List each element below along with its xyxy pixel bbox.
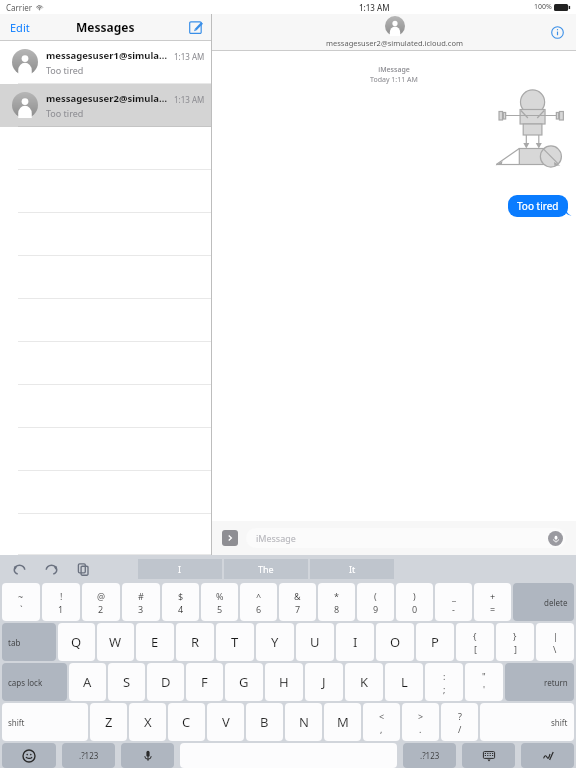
staticText: 100% — [534, 2, 552, 12]
button[interactable]: Handwriting — [521, 743, 574, 768]
button[interactable]: B — [246, 703, 283, 741]
staticText: E — [151, 633, 159, 651]
button[interactable]: } — [496, 623, 534, 661]
button[interactable]: @ — [82, 583, 120, 621]
button[interactable]: { — [456, 623, 494, 661]
button[interactable]: ~ — [2, 583, 40, 621]
button[interactable]: E — [136, 623, 174, 661]
button[interactable]: & — [279, 583, 316, 621]
button[interactable]: + — [474, 583, 511, 621]
button[interactable]: messagesuser1@simulate... — [0, 41, 211, 84]
button[interactable]: .?123 — [62, 743, 115, 768]
button[interactable]: : — [425, 663, 463, 701]
button[interactable]: ! — [42, 583, 80, 621]
button[interactable]: Dictate — [121, 743, 174, 768]
button[interactable]: Z — [90, 703, 127, 741]
button[interactable]: Redo — [42, 560, 60, 578]
button[interactable]: shift — [480, 703, 574, 741]
button[interactable]: Edit — [0, 16, 40, 39]
button[interactable]: R — [176, 623, 214, 661]
button[interactable]: I — [138, 559, 222, 579]
staticText: Too tired — [517, 199, 559, 213]
button[interactable]: Hide keyboard — [462, 743, 515, 768]
button[interactable]: % — [201, 583, 238, 621]
staticText: 1:13 AM — [174, 94, 205, 105]
staticText: ] — [514, 643, 517, 655]
button[interactable]: U — [296, 623, 334, 661]
button[interactable]: Y — [256, 623, 294, 661]
button[interactable]: M — [324, 703, 361, 741]
button[interactable]: > — [402, 703, 439, 741]
button[interactable]: T — [216, 623, 254, 661]
button[interactable]: A — [69, 663, 106, 701]
button[interactable]: N — [285, 703, 322, 741]
staticText: T — [231, 633, 239, 651]
staticText: P — [431, 633, 439, 651]
staticText: ` — [20, 603, 23, 615]
button[interactable]: delete — [513, 583, 574, 621]
button[interactable]: P — [416, 623, 454, 661]
staticText: 3 — [138, 603, 144, 615]
button[interactable]: caps lock — [2, 663, 67, 701]
button[interactable]: ( — [357, 583, 394, 621]
button[interactable]: $ — [162, 583, 199, 621]
button[interactable]: Compose new message — [181, 17, 211, 37]
staticText: + — [490, 590, 496, 602]
staticText: 7 — [295, 603, 301, 615]
button[interactable]: iMessage — [246, 528, 566, 548]
button[interactable]: J — [305, 663, 343, 701]
staticText: . — [419, 723, 422, 735]
button[interactable]: .?123 — [403, 743, 456, 768]
button[interactable]: ^ — [240, 583, 277, 621]
button[interactable]: Paste — [74, 560, 92, 578]
staticText: ^ — [256, 590, 262, 602]
button[interactable]: * — [318, 583, 355, 621]
button[interactable]: X — [129, 703, 166, 741]
button[interactable]: Q — [58, 623, 95, 661]
button[interactable]: | — [536, 623, 574, 661]
button[interactable]: L — [385, 663, 423, 701]
button[interactable]: V — [207, 703, 244, 741]
button[interactable]: < — [363, 703, 400, 741]
button[interactable]: # — [122, 583, 160, 621]
button[interactable]: App drawer — [222, 530, 238, 546]
button[interactable]: S — [108, 663, 145, 701]
staticText: delete — [544, 597, 568, 608]
staticText: - — [452, 603, 455, 615]
staticText: L — [401, 673, 408, 691]
button[interactable]: Details — [547, 22, 568, 43]
button[interactable]: It — [310, 559, 394, 579]
button[interactable]: messagesuser2@simulat... — [0, 84, 211, 127]
button[interactable]: ? — [441, 703, 478, 741]
button[interactable]: F — [186, 663, 223, 701]
button[interactable]: Dictate — [548, 531, 563, 546]
staticText: ( — [374, 590, 377, 602]
button[interactable]: tab — [2, 623, 56, 661]
button[interactable]: " — [465, 663, 503, 701]
button[interactable]: Undo — [10, 560, 28, 578]
staticText: The — [258, 563, 274, 575]
button[interactable]: Too tired — [508, 195, 568, 217]
button[interactable]: The — [224, 559, 308, 579]
button[interactable]: W — [97, 623, 134, 661]
staticText: } — [513, 630, 517, 642]
staticText: B — [260, 713, 269, 731]
button[interactable]: return — [505, 663, 574, 701]
staticText: Edit — [10, 20, 30, 35]
button[interactable]: O — [376, 623, 414, 661]
button[interactable]: _ — [435, 583, 472, 621]
button[interactable]: G — [225, 663, 263, 701]
button[interactable]: I — [336, 623, 374, 661]
button[interactable]: D — [147, 663, 184, 701]
staticText: Q — [71, 633, 82, 651]
staticText: iMessage — [256, 532, 296, 544]
staticText: G — [239, 673, 249, 691]
button[interactable]: shift — [2, 703, 88, 741]
button[interactable]: K — [345, 663, 383, 701]
button[interactable]: Emoji — [2, 743, 56, 768]
button[interactable]: C — [168, 703, 205, 741]
staticText: [ — [474, 643, 477, 655]
button[interactable]: ) — [396, 583, 433, 621]
button[interactable]: H — [265, 663, 303, 701]
